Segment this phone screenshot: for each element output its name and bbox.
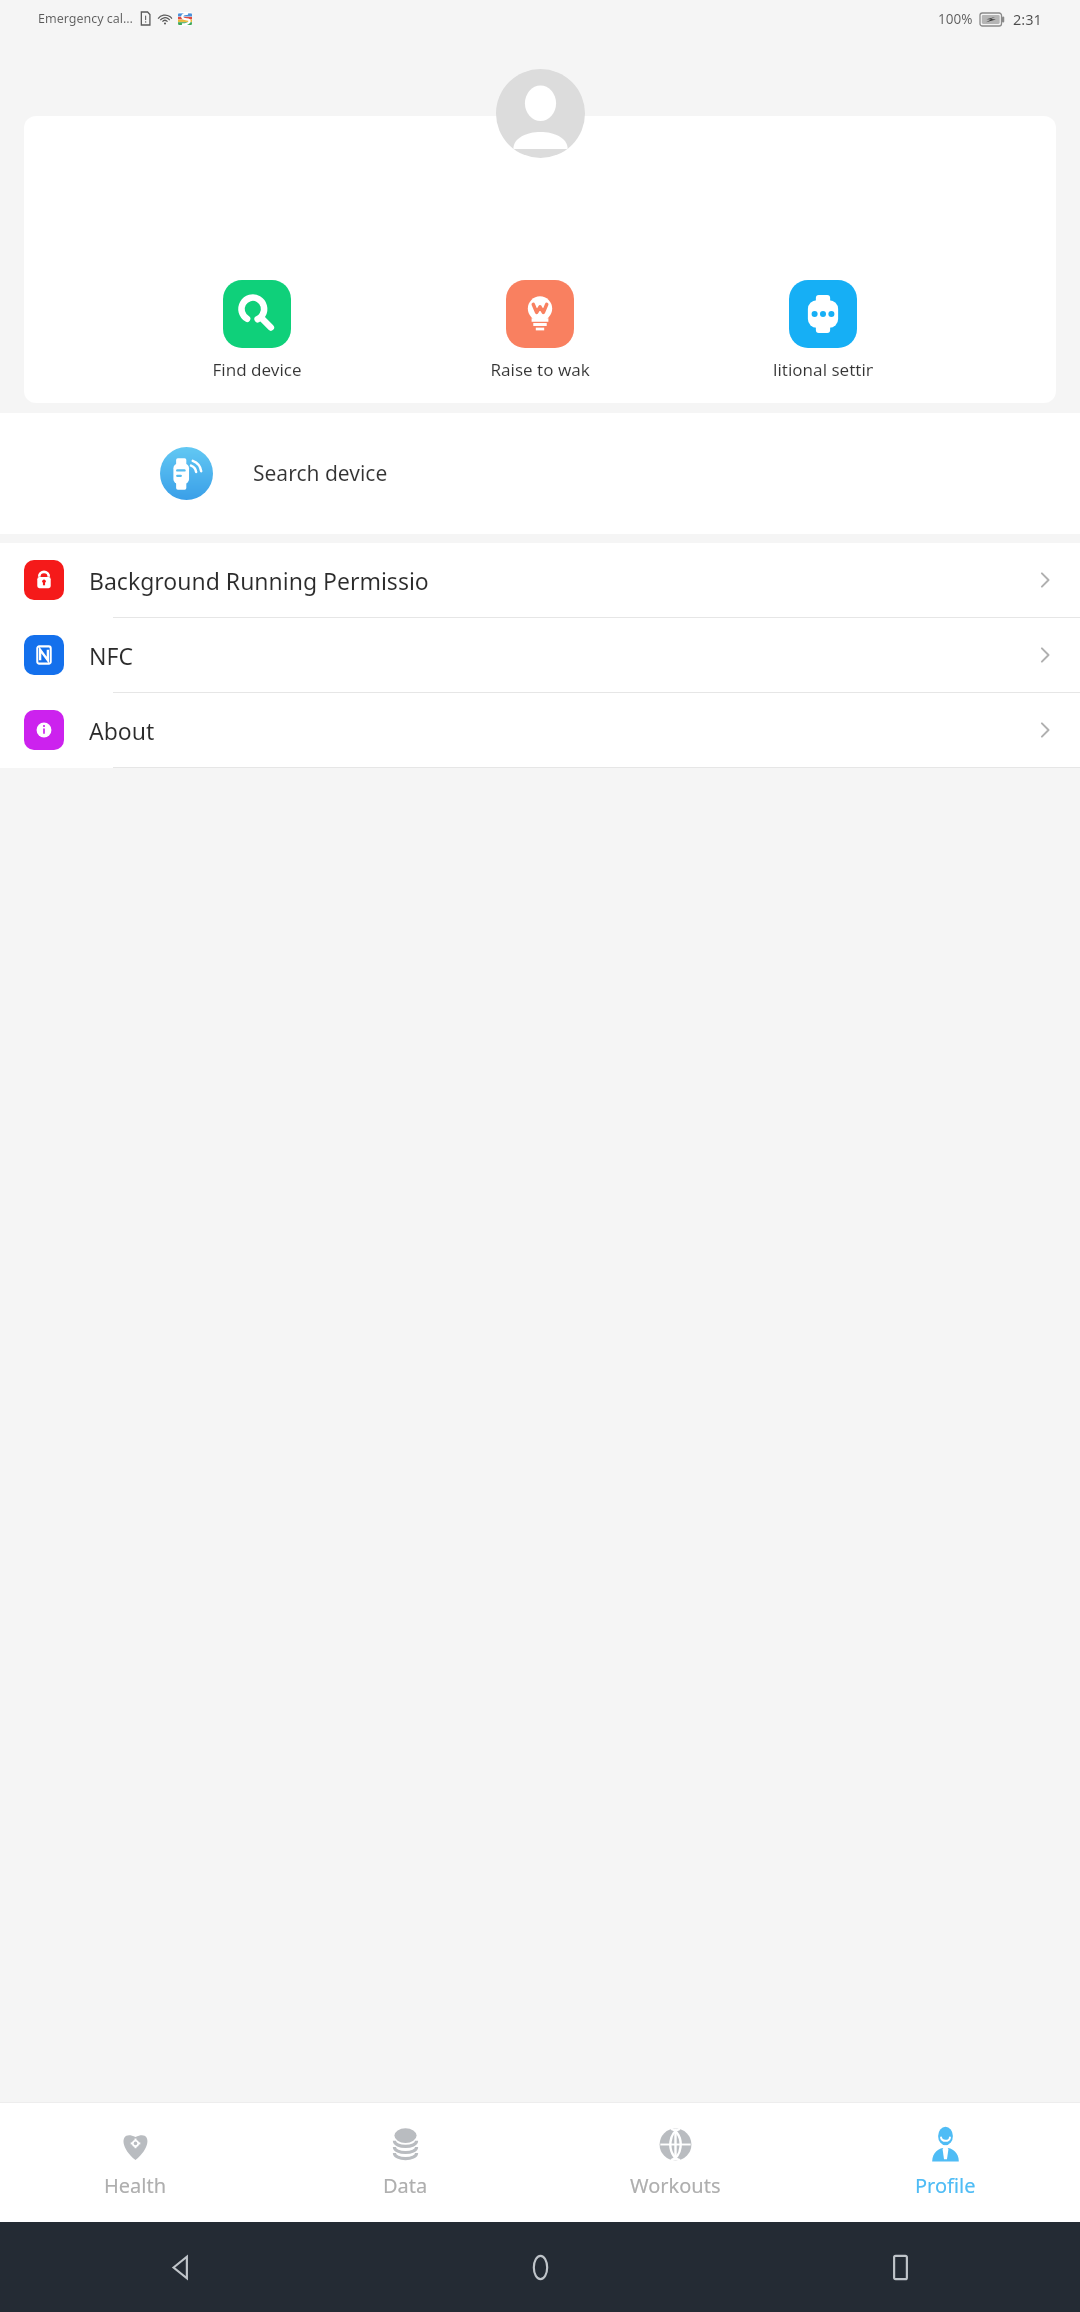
button[interactable]: Health (0, 2103, 270, 2222)
staticText: 2:31 (1013, 9, 1042, 29)
button[interactable]: Background Running Permissio (0, 543, 1080, 617)
staticText: Workouts (630, 2172, 721, 2199)
staticText: Data (383, 2172, 428, 2199)
button[interactable]: About (0, 693, 1080, 767)
button[interactable]: Search device (0, 413, 1080, 534)
staticText: Raise to wake (490, 358, 590, 381)
staticText: Emergency cal… (38, 10, 133, 27)
staticText: 100% (938, 10, 973, 28)
button[interactable]: NFC (0, 618, 1080, 692)
button[interactable]: Back (0, 2222, 360, 2312)
staticText: Health (104, 2172, 167, 2199)
staticText: Profile (915, 2172, 976, 2199)
staticText: Find device (212, 358, 302, 381)
button[interactable]: Data (270, 2103, 540, 2222)
button[interactable]: Find device (207, 280, 307, 381)
button[interactable]: Workouts (540, 2103, 810, 2222)
staticText: About (89, 715, 1034, 746)
staticText: NFC (89, 640, 1034, 671)
button[interactable]: Profile photo (496, 69, 585, 158)
button[interactable]: Profile (810, 2103, 1080, 2222)
staticText: Search device (253, 459, 388, 488)
staticText: Background Running Permissio (89, 565, 1034, 596)
button[interactable]: litional settings (773, 280, 873, 381)
button[interactable]: Recent apps (720, 2222, 1080, 2312)
button[interactable]: Home (360, 2222, 720, 2312)
staticText: litional settings (773, 358, 873, 381)
button[interactable]: Raise to wake (490, 280, 590, 381)
